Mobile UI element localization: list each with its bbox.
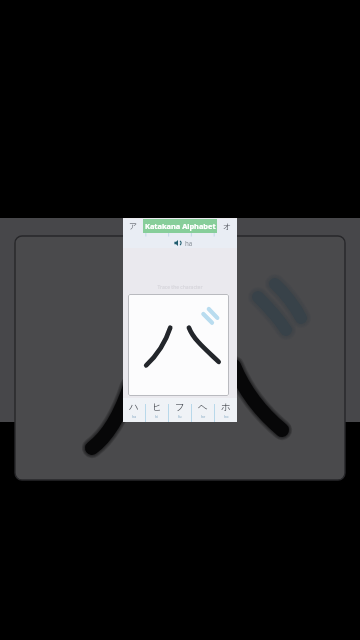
button[interactable]: オ — [217, 219, 237, 233]
staticText: オ — [223, 221, 232, 231]
button[interactable]: ヒ — [146, 398, 168, 422]
staticText: ha — [185, 239, 193, 247]
staticText: he — [201, 414, 206, 419]
staticText: ア — [129, 221, 138, 231]
staticText: フ — [175, 401, 185, 413]
button[interactable]: ホ — [215, 398, 237, 422]
button[interactable]: Tracing area — [128, 294, 229, 396]
staticText: ヒ — [152, 401, 162, 413]
staticText: ho — [224, 414, 229, 419]
staticText: hi — [155, 414, 159, 419]
staticText: fu — [178, 414, 182, 419]
button[interactable]: Play sound — [165, 238, 195, 248]
button[interactable]: ア — [123, 219, 143, 233]
button[interactable]: ヘ — [192, 398, 214, 422]
staticText: ha — [132, 414, 137, 419]
button[interactable]: Katakana Alphabet — [143, 219, 217, 233]
button[interactable]: ハ — [123, 398, 145, 422]
staticText: Katakana Alphabet — [145, 221, 216, 231]
button[interactable]: フ — [169, 398, 191, 422]
staticText: ハ — [129, 401, 139, 413]
staticText: ヘ — [198, 401, 208, 413]
staticText: ホ — [221, 401, 231, 413]
staticText: Trace the character — [123, 284, 237, 291]
